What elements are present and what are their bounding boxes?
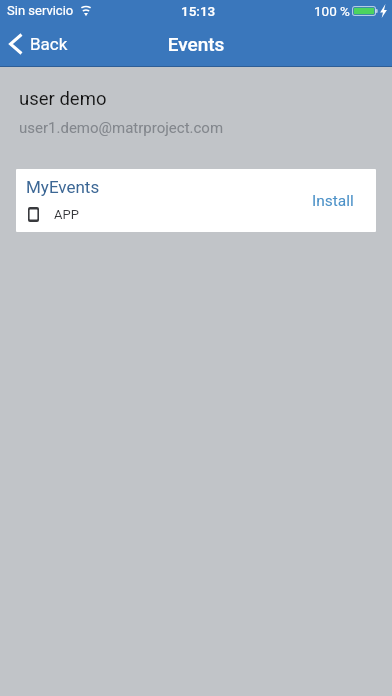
other: Back [9, 33, 23, 55]
staticText: APP [54, 207, 79, 222]
staticText: Install [312, 192, 354, 210]
button[interactable]: Back [0, 24, 78, 64]
staticText: Sin servicio [7, 3, 74, 18]
staticText: Events [0, 33, 392, 55]
staticText: user demo [19, 88, 107, 110]
staticText: MyEvents [26, 177, 100, 197]
button[interactable]: Install [304, 169, 362, 232]
staticText: Back [30, 34, 68, 54]
staticText: 15:13 [181, 3, 216, 19]
staticText: 100 % [314, 3, 350, 19]
button[interactable]: MyEvents [16, 169, 376, 232]
staticText: user1.demo@matrproject.com [19, 119, 224, 137]
